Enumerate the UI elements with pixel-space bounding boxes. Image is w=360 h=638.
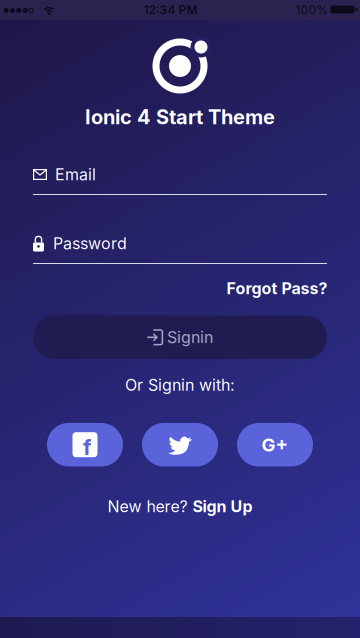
button[interactable]: Forgot Pass?: [226, 279, 327, 298]
staticText: Signin: [167, 328, 213, 347]
staticText: New here?: [107, 497, 187, 516]
staticText: 100%: [295, 3, 328, 17]
staticText: 12:34 PM: [143, 3, 197, 17]
staticText: Forgot Pass?: [226, 279, 327, 298]
button[interactable]: Email: [33, 161, 327, 187]
button[interactable]: Password: [33, 230, 327, 256]
staticText: f: [83, 435, 91, 460]
staticText: G+: [261, 434, 288, 456]
button[interactable]: Signin: [33, 315, 327, 359]
button[interactable]: Sign in with Google: [237, 423, 313, 466]
button[interactable]: Sign Up: [107, 497, 252, 516]
staticText: Or Signin with:: [125, 376, 235, 394]
button[interactable]: Sign in with Facebook: [47, 423, 123, 466]
button[interactable]: Sign in with Twitter: [142, 423, 218, 466]
staticText: Email: [55, 165, 96, 184]
staticText: Ionic 4 Start Theme: [85, 105, 275, 129]
staticText: Password: [53, 234, 127, 253]
staticText: Sign Up: [192, 497, 252, 516]
